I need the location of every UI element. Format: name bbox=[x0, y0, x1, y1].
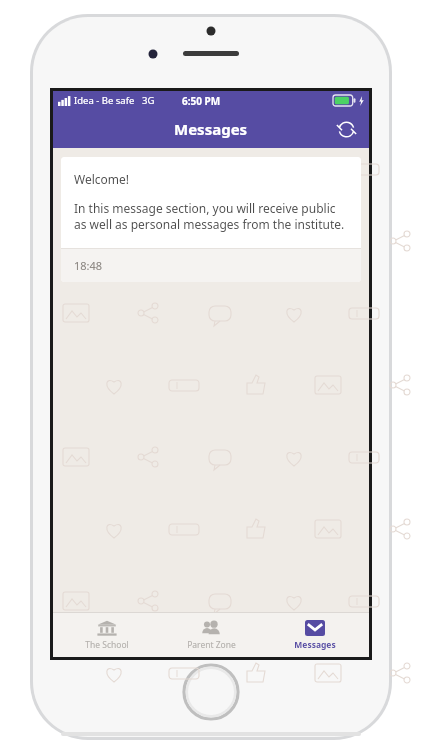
staticText: Welcome! bbox=[74, 171, 130, 187]
staticText: 18:48 bbox=[74, 258, 103, 273]
button[interactable]: Parent Zone bbox=[161, 613, 261, 657]
staticText: Idea - Be safe bbox=[74, 94, 135, 107]
button[interactable]: The School bbox=[57, 613, 157, 657]
staticText: Messages bbox=[174, 119, 248, 139]
staticText: 3G bbox=[142, 94, 155, 107]
button[interactable]: Welcome! bbox=[61, 157, 361, 282]
staticText: The School bbox=[85, 639, 129, 651]
button[interactable]: Refresh bbox=[331, 114, 361, 144]
staticText: In this message section, you will receiv… bbox=[74, 200, 348, 233]
staticText: Parent Zone bbox=[187, 639, 236, 651]
button[interactable]: Messages bbox=[265, 613, 365, 657]
staticText: Messages bbox=[294, 639, 336, 651]
staticText: 6:50 PM bbox=[182, 94, 221, 108]
